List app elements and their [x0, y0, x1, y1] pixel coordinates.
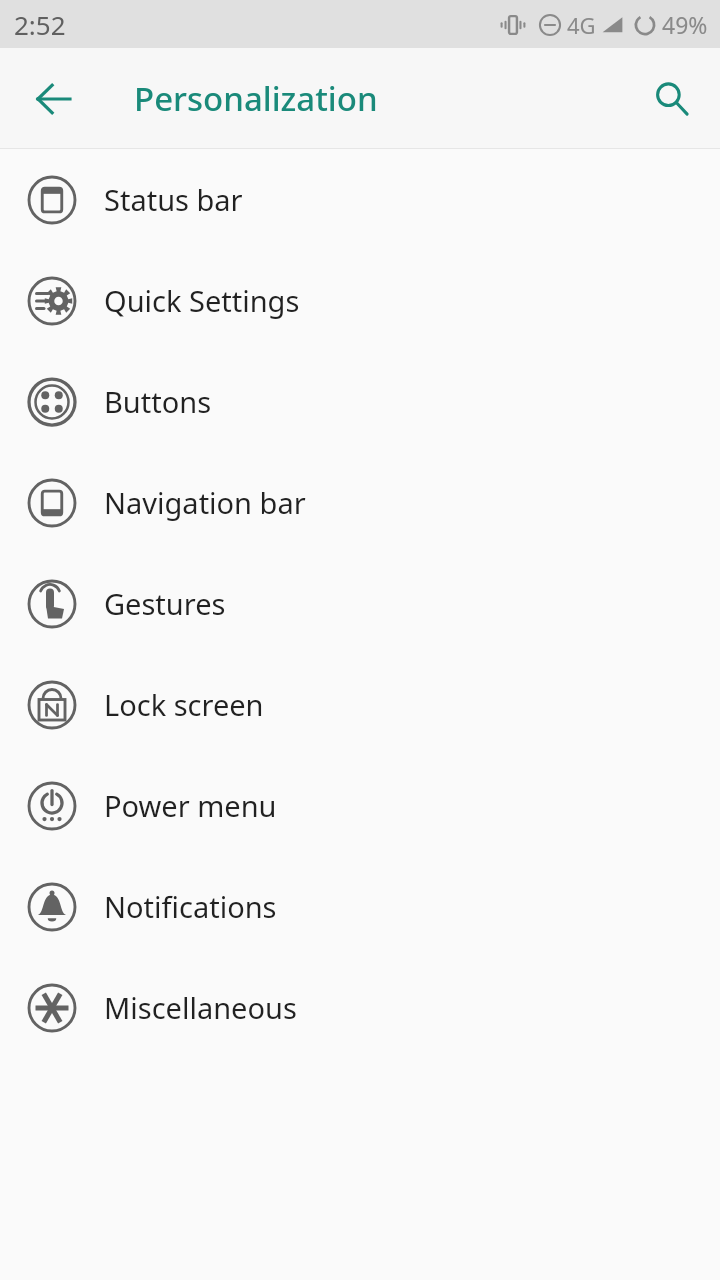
staticText: 49%	[662, 9, 708, 40]
button[interactable]: Gestures	[0, 553, 720, 654]
button[interactable]: Lock screen	[0, 654, 720, 755]
button[interactable]: Power menu	[0, 755, 720, 856]
staticText: Power menu	[104, 786, 277, 825]
staticText: Notifications	[104, 887, 277, 926]
staticText: Status bar	[104, 180, 243, 219]
button[interactable]: Miscellaneous	[0, 957, 720, 1058]
staticText: Navigation bar	[104, 483, 306, 522]
button[interactable]: Back	[16, 61, 92, 137]
button[interactable]: Quick Settings	[0, 250, 720, 351]
button[interactable]: Navigation bar	[0, 452, 720, 553]
button[interactable]: Status bar	[0, 149, 720, 250]
staticText: Lock screen	[104, 685, 264, 724]
staticText: Gestures	[104, 584, 226, 623]
staticText: 2:52	[14, 7, 66, 42]
staticText: Quick Settings	[104, 281, 300, 320]
button[interactable]: Buttons	[0, 351, 720, 452]
staticText: 4G	[567, 10, 596, 40]
staticText: Buttons	[104, 382, 212, 421]
staticText: Miscellaneous	[104, 988, 297, 1027]
button[interactable]: Search	[636, 63, 708, 135]
staticText: Personalization	[134, 76, 378, 121]
button[interactable]: Notifications	[0, 856, 720, 957]
